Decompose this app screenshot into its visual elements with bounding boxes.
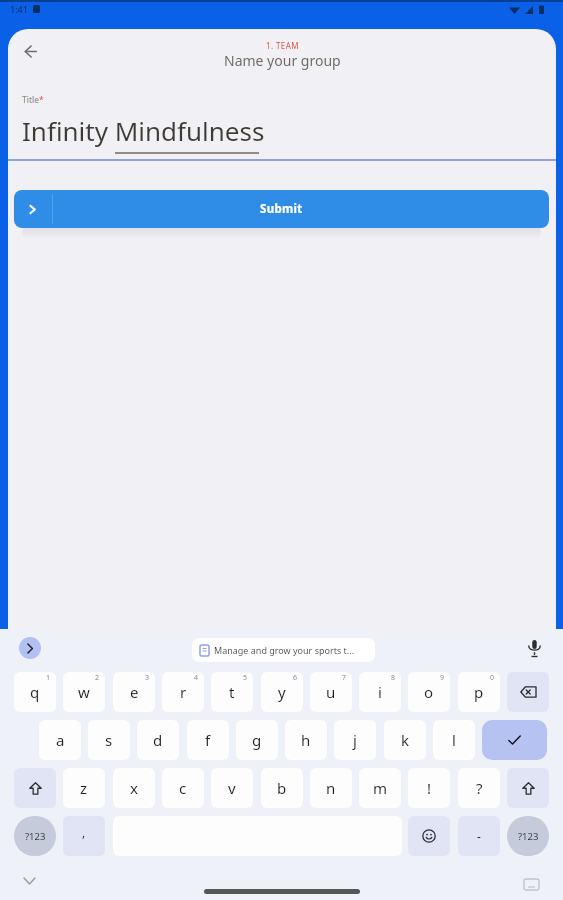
button[interactable]: p xyxy=(458,672,500,712)
staticText: ?123 xyxy=(25,830,46,843)
staticText: 5 xyxy=(243,673,248,683)
button[interactable]: f xyxy=(187,720,229,760)
button[interactable]: u xyxy=(310,672,352,712)
button[interactable]: ? xyxy=(458,768,500,808)
button[interactable]: t xyxy=(211,672,253,712)
staticText: 1. TEAM xyxy=(266,40,299,51)
button[interactable]: l xyxy=(433,720,475,760)
staticText: w xyxy=(78,682,90,702)
staticText: n xyxy=(326,778,336,798)
button[interactable] xyxy=(522,636,546,662)
button[interactable]: i xyxy=(359,672,401,712)
staticText: m xyxy=(373,778,388,798)
button[interactable]: j xyxy=(334,720,376,760)
staticText: o xyxy=(424,682,434,702)
staticText: Submit xyxy=(260,201,303,217)
button[interactable] xyxy=(14,768,56,808)
button[interactable] xyxy=(408,816,450,856)
staticText: r xyxy=(180,682,187,702)
button[interactable]: r xyxy=(162,672,204,712)
staticText: 8 xyxy=(391,673,396,683)
staticText: i xyxy=(378,682,382,702)
staticText: k xyxy=(401,730,410,750)
button[interactable]: k xyxy=(384,720,426,760)
button[interactable]: o xyxy=(408,672,450,712)
staticText: c xyxy=(179,778,187,798)
staticText: d xyxy=(153,730,163,750)
staticText: 4 xyxy=(194,673,199,683)
button[interactable] xyxy=(507,672,549,712)
staticText: p xyxy=(474,682,484,702)
button[interactable]: v xyxy=(211,768,253,808)
button[interactable]: ?123 xyxy=(14,816,56,856)
staticText: 1:41 xyxy=(10,3,28,15)
staticText: Name your group xyxy=(224,51,341,70)
staticText: b xyxy=(277,778,287,798)
button[interactable]: q xyxy=(14,672,56,712)
button[interactable]: ! xyxy=(408,768,450,808)
staticText: ?123 xyxy=(518,830,539,843)
button[interactable]: g xyxy=(236,720,278,760)
button[interactable]: - xyxy=(458,816,500,856)
button[interactable]: m xyxy=(359,768,401,808)
staticText: 9 xyxy=(440,673,445,683)
button[interactable] xyxy=(16,37,44,65)
staticText: v xyxy=(228,778,236,798)
staticText: , xyxy=(82,824,86,840)
button[interactable] xyxy=(482,720,547,760)
staticText: 1 xyxy=(46,673,51,683)
button[interactable]: a xyxy=(39,720,81,760)
staticText: - xyxy=(477,828,481,844)
staticText: l xyxy=(452,730,456,750)
staticText: 3 xyxy=(145,673,150,683)
staticText: g xyxy=(252,730,262,750)
button[interactable] xyxy=(507,768,549,808)
button[interactable]: b xyxy=(261,768,303,808)
button[interactable] xyxy=(204,889,360,894)
staticText: q xyxy=(30,682,40,702)
staticText: j xyxy=(353,730,357,750)
staticText: a xyxy=(56,730,65,750)
staticText: z xyxy=(80,778,88,798)
staticText: Infinity Mindfulness xyxy=(22,113,265,148)
staticText: 0 xyxy=(490,673,495,683)
staticText: h xyxy=(301,730,311,750)
staticText: ? xyxy=(476,778,483,798)
staticText: t xyxy=(229,682,235,702)
button[interactable]: z xyxy=(63,768,105,808)
button[interactable]: h xyxy=(285,720,327,760)
button[interactable]: Manage and grow your sports t... xyxy=(192,638,375,662)
button[interactable]: s xyxy=(88,720,130,760)
button[interactable]: n xyxy=(310,768,352,808)
staticText: 6 xyxy=(293,673,298,683)
button[interactable]: y xyxy=(261,672,303,712)
button[interactable]: c xyxy=(162,768,204,808)
button[interactable] xyxy=(19,637,41,659)
staticText: 7 xyxy=(342,673,347,683)
staticText: f xyxy=(205,730,211,750)
staticText: u xyxy=(326,682,336,702)
button[interactable]: e xyxy=(113,672,155,712)
button[interactable]: ?123 xyxy=(507,816,549,856)
staticText: x xyxy=(130,778,138,798)
staticText: Manage and grow your sports t... xyxy=(214,644,355,656)
staticText: s xyxy=(105,730,113,750)
button[interactable]: x xyxy=(113,768,155,808)
button[interactable]: Submit xyxy=(14,190,549,228)
staticText: ! xyxy=(427,778,432,798)
button[interactable]: d xyxy=(137,720,179,760)
button[interactable]: w xyxy=(63,672,105,712)
staticText: e xyxy=(130,682,139,702)
staticText: y xyxy=(278,682,286,702)
staticText: 2 xyxy=(95,673,100,683)
button[interactable]: , xyxy=(63,816,105,856)
staticText: Title* xyxy=(22,94,44,106)
